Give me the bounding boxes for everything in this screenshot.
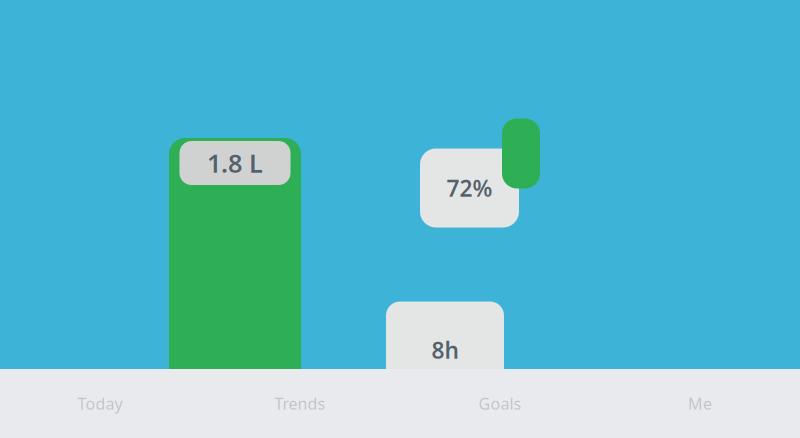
staticText: Today (77, 393, 122, 414)
staticText: 8h (431, 335, 458, 365)
button[interactable]: Trends (200, 369, 400, 438)
button[interactable]: 1.8 L (169, 138, 301, 384)
staticText: Me (688, 393, 712, 414)
button[interactable]: Today (0, 369, 200, 438)
button[interactable]: 8h (386, 301, 504, 398)
staticText: Goals (478, 393, 521, 414)
staticText: 1.8 L (207, 146, 263, 180)
staticText: 72% (446, 173, 492, 203)
button[interactable]: 72% (420, 118, 540, 227)
button[interactable]: Goals (400, 369, 600, 438)
staticText: Trends (274, 393, 325, 414)
